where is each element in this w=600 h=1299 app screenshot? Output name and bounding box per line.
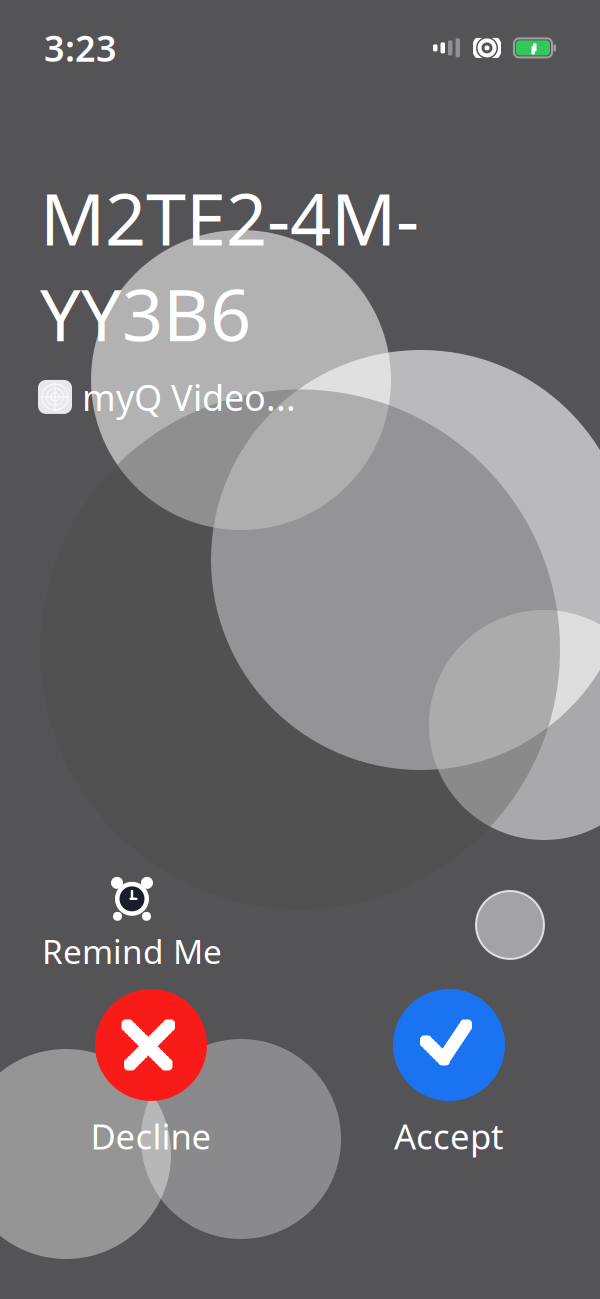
staticText: 3:23 — [44, 24, 117, 72]
button[interactable]: Remind Me — [42, 877, 222, 973]
staticText: Decline — [90, 1113, 211, 1159]
button[interactable]: Decline — [76, 989, 226, 1159]
staticText: myQ Video... — [82, 373, 296, 421]
button[interactable]: Accept — [374, 989, 524, 1159]
staticText: Accept — [394, 1113, 504, 1159]
button[interactable]: Message — [462, 877, 558, 973]
staticText: Remind Me — [42, 929, 222, 973]
staticText: M2TE2-4M-YY3B6 — [40, 170, 419, 361]
